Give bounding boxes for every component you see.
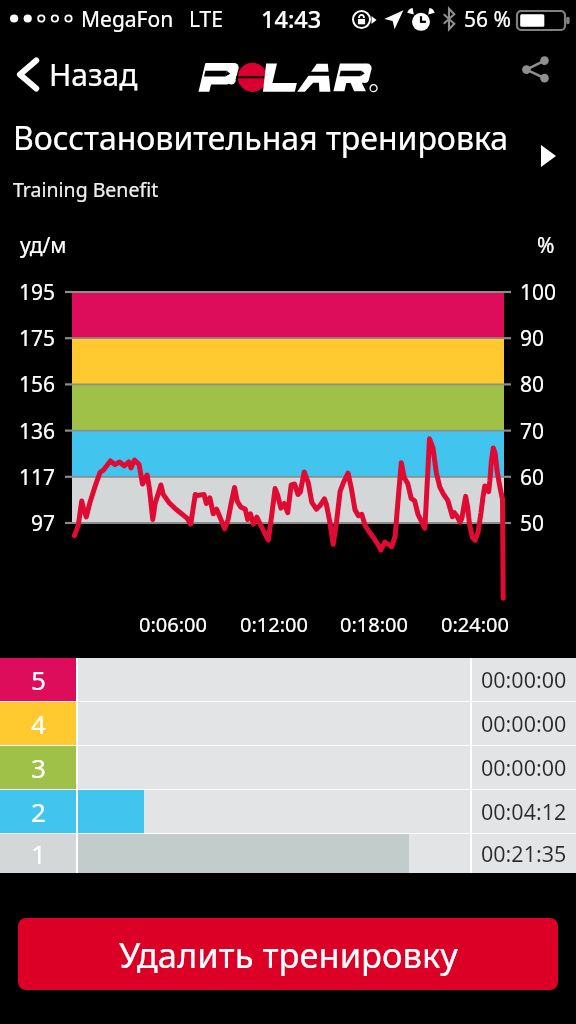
button[interactable]: 2: [0, 790, 576, 833]
staticText: уд/м: [20, 231, 67, 260]
button[interactable]: 5: [0, 658, 576, 701]
staticText: 175: [0, 324, 55, 353]
staticText: %: [537, 231, 555, 260]
staticText: Назад: [49, 54, 138, 95]
staticText: 5: [31, 662, 46, 697]
staticText: 0:06:00: [123, 611, 223, 638]
button[interactable]: Удалить тренировку: [18, 918, 558, 990]
staticText: 80: [520, 370, 545, 399]
staticText: LTE: [189, 5, 223, 34]
staticText: 1: [31, 836, 46, 871]
staticText: 60: [520, 463, 545, 492]
staticText: Training Benefit: [13, 176, 159, 203]
button[interactable]: Назад: [0, 45, 150, 104]
staticText: 56 %: [464, 5, 511, 34]
button[interactable]: 1: [0, 834, 576, 873]
staticText: 97: [0, 509, 55, 538]
button[interactable]: Восстановительная тренировка: [0, 108, 576, 215]
staticText: 00:00:00: [481, 753, 567, 782]
staticText: 90: [520, 324, 545, 353]
staticText: 50: [520, 509, 545, 538]
staticText: MegaFon: [81, 5, 174, 34]
button[interactable]: 3: [0, 746, 576, 789]
staticText: 4: [31, 706, 46, 741]
staticText: 100: [520, 278, 557, 307]
staticText: 195: [0, 278, 55, 307]
staticText: 00:21:35: [481, 839, 567, 868]
staticText: Удалить тренировку: [119, 931, 458, 978]
staticText: 0:18:00: [324, 611, 424, 638]
staticText: 00:04:12: [481, 797, 567, 826]
staticText: 00:00:00: [481, 709, 567, 738]
staticText: 156: [0, 370, 55, 399]
button[interactable]: 4: [0, 702, 576, 745]
staticText: 70: [520, 417, 545, 446]
staticText: 2: [31, 794, 46, 829]
staticText: 117: [0, 463, 55, 492]
staticText: 0:24:00: [425, 611, 525, 638]
staticText: 0:12:00: [224, 611, 324, 638]
staticText: 14:43: [261, 3, 322, 35]
staticText: Восстановительная тренировка: [13, 116, 509, 160]
staticText: 00:00:00: [481, 665, 567, 694]
staticText: 136: [0, 417, 55, 446]
button[interactable]: Share: [516, 46, 564, 94]
staticText: 3: [31, 750, 46, 785]
